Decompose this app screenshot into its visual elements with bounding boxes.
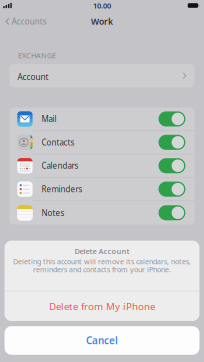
staticText: Notes xyxy=(41,207,64,218)
button[interactable]: Accounts xyxy=(0,12,53,30)
button[interactable]: Calendars, on xyxy=(158,158,185,173)
button[interactable]: Cancel xyxy=(4,326,199,355)
staticText: reminders and contacts from your iPhone. xyxy=(33,265,171,274)
button[interactable]: Delete from My iPhone xyxy=(4,291,199,321)
button[interactable]: Reminders, on xyxy=(158,182,185,197)
staticText: Work xyxy=(91,16,113,27)
staticText: Cancel xyxy=(86,334,118,347)
staticText: Delete from My iPhone xyxy=(49,299,155,313)
staticText: Accounts xyxy=(12,16,47,27)
staticText: Account xyxy=(17,71,48,83)
staticText: Delete Account xyxy=(74,246,129,256)
staticText: Contacts xyxy=(41,137,74,148)
staticText: Calendars xyxy=(41,160,78,171)
staticText: 10.00 xyxy=(93,0,111,11)
staticText: EXCHANGE xyxy=(18,50,56,60)
staticText: Deleting this account will remove its ca… xyxy=(13,257,191,266)
staticText: Reminders xyxy=(41,184,82,195)
button[interactable]: Mail, on xyxy=(158,111,185,126)
button[interactable]: Notes, on xyxy=(158,205,185,220)
button[interactable]: Account xyxy=(9,64,195,87)
button[interactable]: Contacts, on xyxy=(158,135,185,150)
staticText: Mail xyxy=(41,113,56,124)
